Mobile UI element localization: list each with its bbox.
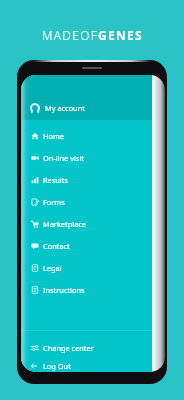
staticText: MADEOF bbox=[42, 27, 98, 43]
button[interactable]: Marketplace bbox=[21, 213, 152, 235]
staticText: My account bbox=[45, 103, 85, 113]
button[interactable]: Home bbox=[21, 125, 152, 147]
other: My account bbox=[29, 102, 41, 114]
staticText: Instructions bbox=[43, 285, 85, 295]
staticText: Results bbox=[43, 175, 68, 185]
staticText: Legal bbox=[43, 263, 62, 273]
staticText: Contact bbox=[43, 241, 70, 251]
button[interactable]: Forms bbox=[21, 191, 152, 213]
button[interactable]: Log Out bbox=[21, 359, 152, 372]
button[interactable]: Contact bbox=[21, 235, 152, 257]
staticText: Forms bbox=[43, 197, 65, 207]
staticText: Home bbox=[43, 131, 65, 141]
staticText: Change center bbox=[43, 343, 94, 353]
staticText: GENES bbox=[98, 27, 143, 43]
button[interactable]: Results bbox=[21, 169, 152, 191]
button[interactable]: Legal bbox=[21, 257, 152, 279]
button[interactable]: Instructions bbox=[21, 279, 152, 301]
button[interactable]: Change center bbox=[21, 337, 152, 359]
staticText: On-line visit bbox=[43, 153, 84, 163]
button[interactable]: On-line visit bbox=[21, 147, 152, 169]
staticText: Log Out bbox=[43, 361, 71, 371]
staticText: Marketplace bbox=[43, 219, 86, 229]
button[interactable]: My account bbox=[21, 75, 152, 120]
